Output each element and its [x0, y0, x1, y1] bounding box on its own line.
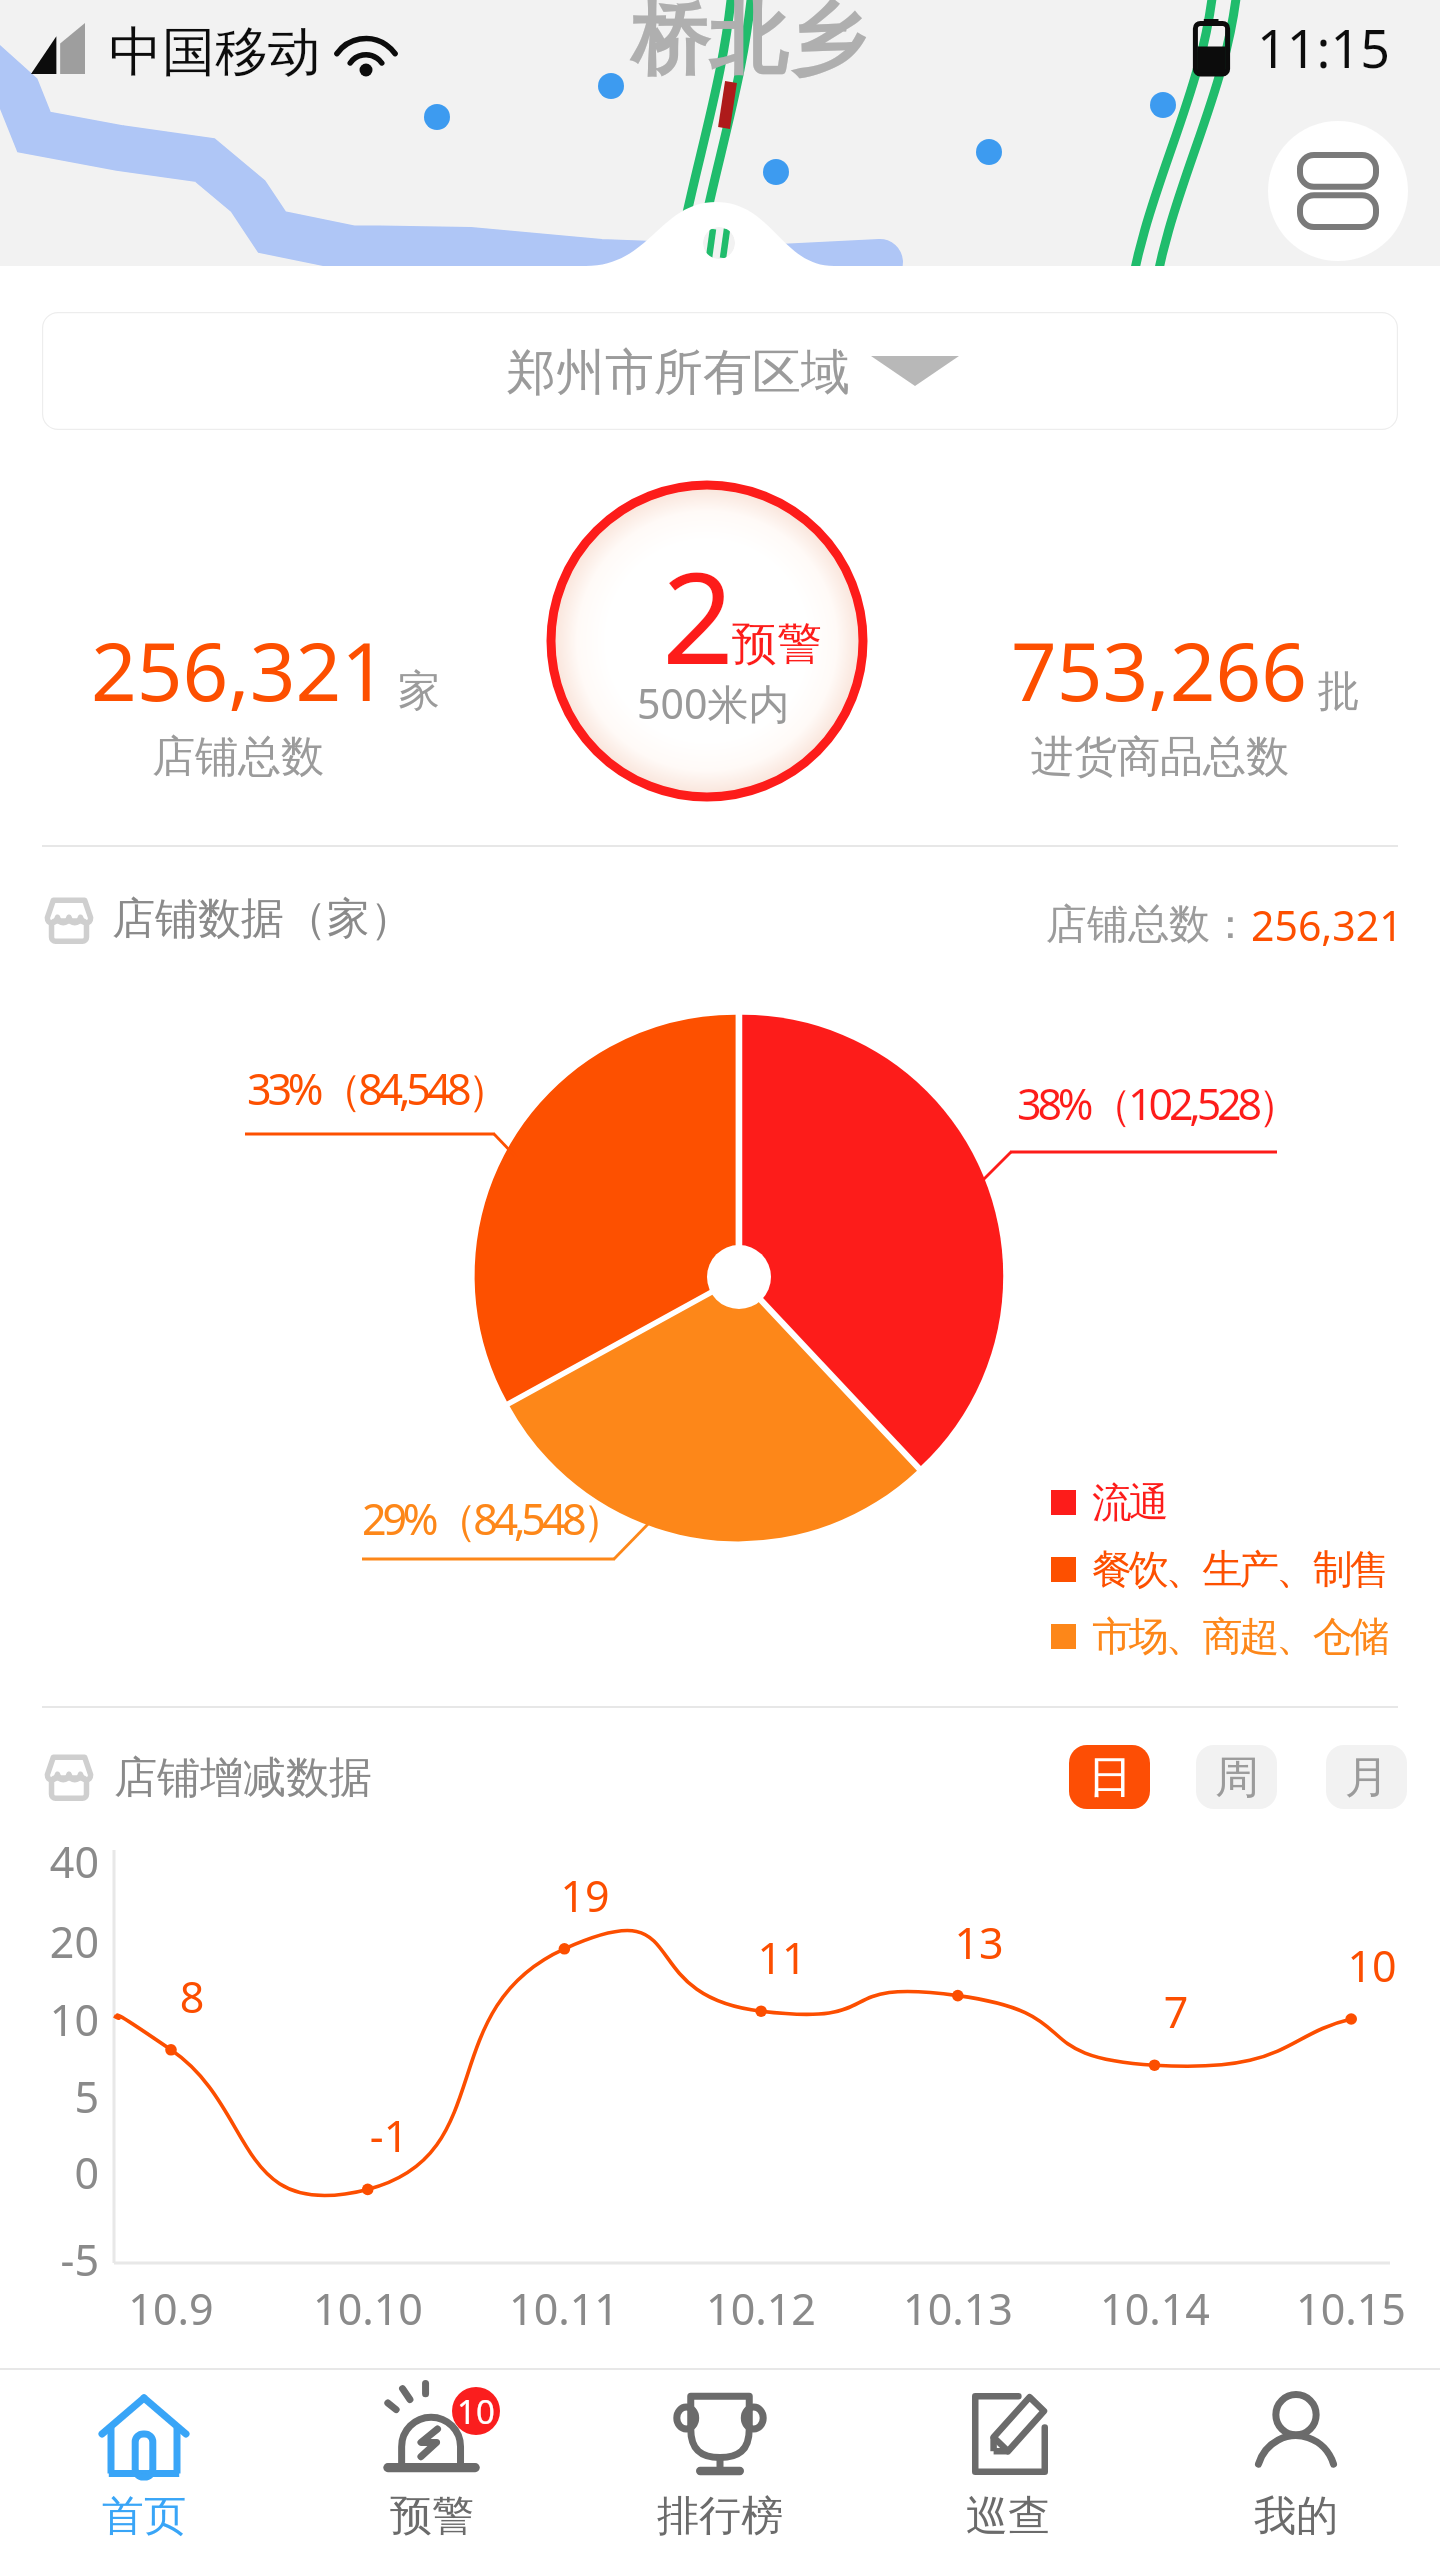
button[interactable]: 我的	[1152, 2370, 1440, 2560]
staticText: 256,321	[91, 615, 387, 724]
staticText: 店铺数据（家）	[112, 892, 413, 946]
button[interactable]: 10	[288, 2370, 576, 2560]
staticText: 500米内	[637, 675, 790, 731]
staticText: 预警	[390, 2490, 474, 2543]
staticText: 月	[1345, 1750, 1389, 1805]
staticText: 周	[1215, 1750, 1259, 1805]
staticText: 11	[722, 1928, 842, 1987]
staticText: 日	[1088, 1750, 1132, 1805]
staticText: 预警	[732, 616, 822, 673]
staticText: 家	[398, 665, 440, 718]
staticText: 38%（102,528）	[1017, 1074, 1297, 1133]
staticText: 10.10	[268, 2279, 468, 2338]
staticText: 进货商品总数	[960, 730, 1360, 784]
staticText: 8	[132, 1967, 252, 2026]
staticText: 市场、商超、仓储	[1092, 1611, 1387, 1661]
staticText: 桥北乡	[631, 0, 865, 89]
staticText: 郑州市所有区域	[507, 342, 850, 404]
staticText: 19	[525, 1866, 645, 1925]
staticText: 首页	[102, 2490, 186, 2543]
staticText: -5	[0, 2230, 99, 2289]
staticText: 7	[1116, 1982, 1236, 2041]
button[interactable]: 周	[1196, 1745, 1277, 1809]
staticText: 巡查	[966, 2490, 1050, 2543]
staticText: 排行榜	[657, 2490, 783, 2543]
staticText: 10.13	[858, 2279, 1058, 2338]
staticText: 33%（84,548）	[247, 1059, 507, 1118]
staticText: 流通	[1092, 1477, 1166, 1527]
staticText: 批	[1318, 665, 1360, 718]
button[interactable]: 月	[1326, 1745, 1407, 1809]
staticText: 店铺总数	[38, 730, 438, 784]
staticText: 5	[0, 2067, 99, 2126]
staticText: 753,266	[1011, 615, 1307, 724]
staticText: 我的	[1254, 2490, 1338, 2543]
staticText: 店铺增减数据	[114, 1751, 372, 1805]
staticText: 2	[662, 529, 735, 701]
staticText: 店铺总数：	[1046, 899, 1251, 951]
staticText: 10	[0, 1990, 99, 2049]
button[interactable]: 排行榜	[576, 2370, 864, 2560]
staticText: 11:15	[1257, 12, 1390, 83]
staticText: 0	[0, 2143, 99, 2202]
button[interactable]: 首页	[0, 2370, 288, 2560]
button[interactable]: 日	[1069, 1745, 1150, 1809]
button[interactable]: 2	[545, 479, 869, 803]
button[interactable]: Split screen	[1268, 121, 1408, 261]
staticText: 餐饮、生产、制售	[1092, 1544, 1387, 1594]
staticText: 256,321	[1251, 897, 1403, 953]
staticText: 29%（84,548）	[362, 1489, 622, 1548]
staticText: 中国移动	[109, 19, 321, 86]
staticText: 10.14	[1055, 2279, 1255, 2338]
staticText: 10	[457, 2389, 495, 2434]
staticText: 20	[0, 1912, 99, 1971]
button[interactable]: 巡查	[864, 2370, 1152, 2560]
button[interactable]: 郑州市所有区域	[42, 312, 1398, 430]
staticText: 10	[1312, 1936, 1432, 1995]
staticText: 10.9	[71, 2279, 271, 2338]
staticText: 13	[919, 1913, 1039, 1972]
staticText: -1	[329, 2106, 449, 2165]
staticText: 40	[0, 1832, 99, 1891]
staticText: 10.15	[1251, 2279, 1440, 2338]
staticText: 10.12	[661, 2279, 861, 2338]
staticText: 10.11	[464, 2279, 664, 2338]
